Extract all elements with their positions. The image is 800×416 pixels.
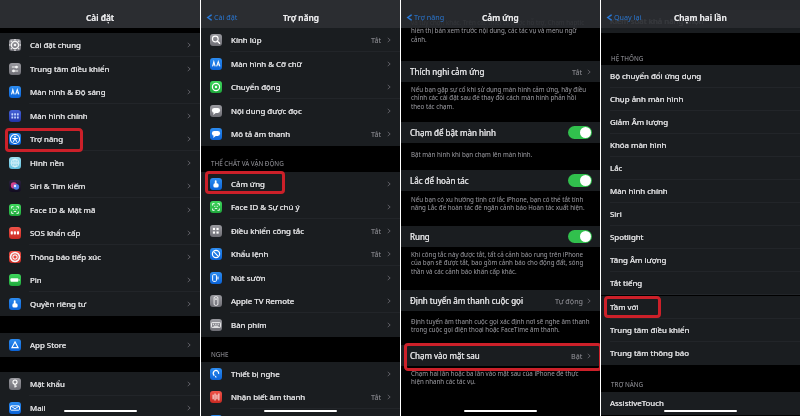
button[interactable]: Màn hình & Cỡ chữ bbox=[201, 52, 400, 76]
button[interactable]: Pin bbox=[0, 268, 200, 292]
button[interactable]: Chạm để bật màn hình bbox=[401, 122, 600, 143]
staticText: Kiểm soát khả năng chọn bbox=[610, 16, 704, 27]
button[interactable]: Siri bbox=[601, 203, 800, 226]
staticText: Chạm vào mặt sau bbox=[410, 350, 571, 361]
button[interactable]: Lắc để hoàn tác bbox=[401, 170, 600, 191]
button[interactable]: Khẩu lệnh bbox=[201, 242, 400, 266]
button[interactable]: Thiết bị nghe bbox=[201, 362, 400, 386]
button[interactable]: Toggle on bbox=[568, 230, 592, 243]
staticText: Trung tâm thông báo bbox=[610, 348, 689, 359]
staticText: Trung tâm điều khiển bbox=[30, 64, 186, 75]
staticText: Nội dung được đọc bbox=[231, 106, 386, 117]
staticText: Pin bbox=[30, 275, 186, 286]
button[interactable]: Tắt tiếng bbox=[601, 272, 800, 295]
staticText: Bật bbox=[571, 351, 583, 361]
button[interactable]: Lắc bbox=[601, 157, 800, 180]
staticText: NGHE bbox=[211, 350, 229, 359]
button[interactable]: Bàn phím bbox=[201, 313, 400, 337]
button[interactable]: Màn hình chính bbox=[0, 104, 200, 128]
button[interactable]: Âm thanh nền bbox=[201, 409, 400, 416]
button[interactable]: Tăng Âm lượng bbox=[601, 249, 800, 272]
button[interactable]: Định tuyến âm thanh cuộc gọi bbox=[401, 290, 600, 311]
button[interactable]: Kính lúp bbox=[201, 28, 400, 52]
button[interactable]: Trung tâm thông báo bbox=[601, 342, 800, 365]
button[interactable]: Mô tả âm thanh bbox=[201, 122, 400, 146]
staticText: và tùy chọn khác. Trên các thiết bị được… bbox=[411, 18, 585, 44]
button[interactable]: Nội dung được đọc bbox=[201, 99, 400, 123]
button[interactable]: Bộ chuyển đổi ứng dụng bbox=[601, 65, 800, 88]
button[interactable]: Cài đặt bbox=[201, 10, 242, 24]
button[interactable]: SOS khẩn cấp bbox=[0, 221, 200, 245]
staticText: Khi công tắc này được tắt, tất cả cảnh b… bbox=[411, 250, 584, 276]
button[interactable]: Quay lại bbox=[601, 10, 646, 24]
button[interactable]: Toggle on bbox=[568, 174, 592, 187]
button[interactable]: Face ID & Mật mã bbox=[0, 198, 200, 222]
button[interactable]: Mật khẩu bbox=[0, 372, 200, 396]
staticText: Giảm Âm lượng bbox=[610, 117, 669, 128]
button[interactable]: Face ID & Sự chú ý bbox=[201, 195, 400, 219]
button[interactable]: Màn hình chính bbox=[601, 180, 800, 203]
staticText: Tắt bbox=[572, 67, 583, 77]
staticText: Tự động bbox=[555, 296, 583, 306]
staticText: Chạm hai lần hoặc ba lần vào mặt sau của… bbox=[411, 369, 579, 386]
staticText: Tắt bbox=[371, 129, 382, 139]
button[interactable]: Chuyển động bbox=[201, 75, 400, 99]
button[interactable]: AssistiveTouch bbox=[601, 392, 800, 415]
staticText: Thông báo tiếp xúc bbox=[30, 252, 186, 263]
staticText: Màn hình chính bbox=[610, 186, 668, 197]
staticText: Màn hình & Cỡ chữ bbox=[231, 59, 386, 70]
button[interactable]: Chụp ảnh màn hình bbox=[601, 88, 800, 111]
button[interactable]: App Store bbox=[0, 333, 200, 357]
button[interactable]: Trung tâm điều khiển bbox=[0, 57, 200, 81]
staticText: Cảm ứng bbox=[231, 179, 386, 190]
staticText: Chạm để bật màn hình bbox=[410, 127, 568, 138]
button[interactable]: Thông báo tiếp xúc bbox=[0, 245, 200, 269]
staticText: Lắc để hoàn tác bbox=[410, 175, 568, 186]
button[interactable]: Apple TV Remote bbox=[201, 289, 400, 313]
staticText: Bật màn hình khi bạn chạm lên màn hình. bbox=[411, 150, 533, 158]
staticText: Nhận biết âm thanh bbox=[231, 392, 371, 403]
button[interactable]: Hình nền bbox=[0, 151, 200, 175]
button[interactable]: Chạm vào mặt sau bbox=[401, 345, 600, 366]
button[interactable]: Trợ năng bbox=[0, 127, 200, 151]
staticText: Khẩu lệnh bbox=[231, 249, 371, 260]
button[interactable]: Toggle on bbox=[568, 126, 592, 139]
button[interactable]: Cảm ứng bbox=[201, 172, 400, 196]
button[interactable]: Rung bbox=[401, 226, 600, 247]
staticText: Mail bbox=[30, 403, 186, 414]
button[interactable]: Kiểm soát khả năng chọn bbox=[601, 10, 800, 33]
button[interactable]: Giảm Âm lượng bbox=[601, 111, 800, 134]
button[interactable]: Khóa màn hình bbox=[601, 134, 800, 157]
staticText: Màn hình & Độ sáng bbox=[30, 87, 186, 98]
staticText: HỆ THỐNG bbox=[611, 54, 644, 63]
staticText: Thích nghi cảm ứng bbox=[410, 66, 572, 77]
button[interactable]: Spotlight bbox=[601, 226, 800, 249]
staticText: Bộ chuyển đổi ứng dụng bbox=[610, 71, 702, 82]
staticText: Lắc bbox=[610, 163, 623, 174]
button[interactable]: Trợ năng bbox=[401, 10, 449, 24]
staticText: Điều khiển công tắc bbox=[231, 226, 371, 237]
button[interactable]: Nút sườn bbox=[201, 266, 400, 290]
staticText: Cài đặt bbox=[86, 12, 115, 23]
staticText: THỂ CHẤT VÀ VẬN ĐỘNG bbox=[211, 159, 284, 168]
button[interactable]: Thích nghi cảm ứng bbox=[401, 61, 600, 82]
button[interactable]: Nhận biết âm thanh bbox=[201, 385, 400, 409]
staticText: Apple TV Remote bbox=[231, 296, 386, 307]
button[interactable]: Siri & Tìm kiếm bbox=[0, 174, 200, 198]
staticText: Face ID & Mật mã bbox=[30, 205, 186, 216]
button[interactable]: Cài đặt chung bbox=[0, 33, 200, 57]
button[interactable]: Màn hình & Độ sáng bbox=[0, 80, 200, 104]
staticText: TRỢ NĂNG bbox=[611, 380, 644, 389]
staticText: Chạm hai lần bbox=[674, 12, 727, 23]
button[interactable]: Điều khiển công tắc bbox=[201, 219, 400, 243]
button[interactable]: Quyền riêng tư bbox=[0, 292, 200, 316]
staticText: Định tuyến âm thanh cuộc gọi xác định nơ… bbox=[411, 317, 590, 334]
staticText: Kính lúp bbox=[231, 35, 371, 46]
button[interactable]: Mail bbox=[0, 396, 200, 416]
button[interactable]: Tầm với bbox=[601, 296, 800, 319]
button[interactable]: Trung tâm điều khiển bbox=[601, 319, 800, 342]
staticText: AssistiveTouch bbox=[610, 398, 664, 409]
staticText: Quyền riêng tư bbox=[30, 299, 186, 310]
staticText: Hình nền bbox=[30, 158, 186, 169]
staticText: Rung bbox=[410, 231, 568, 242]
